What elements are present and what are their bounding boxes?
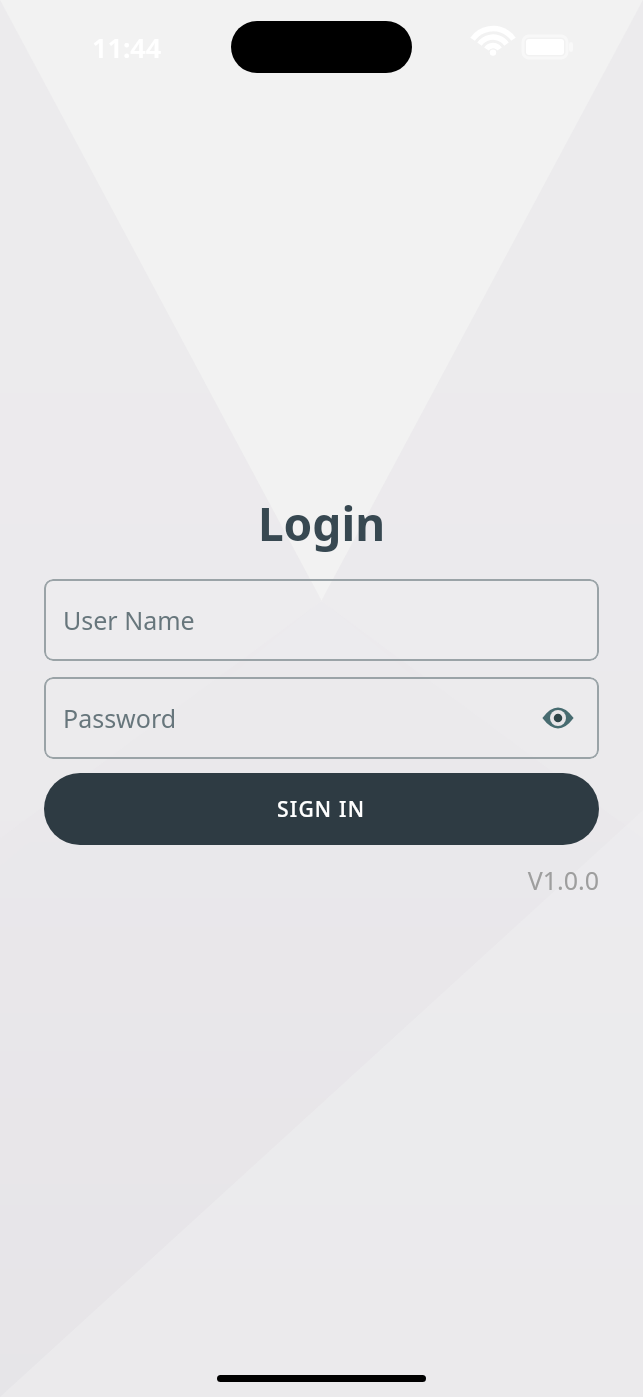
button[interactable]: SIGN IN — [44, 773, 599, 845]
staticText: Password — [63, 701, 177, 735]
staticText: Login — [44, 492, 599, 555]
staticText: User Name — [63, 603, 195, 637]
button[interactable]: User Name — [44, 579, 599, 661]
staticText: V1.0.0 — [44, 863, 599, 897]
staticText: 11:44 — [92, 29, 162, 66]
button[interactable]: Password — [44, 677, 599, 759]
button[interactable]: Show password — [536, 696, 580, 740]
staticText: SIGN IN — [277, 795, 366, 824]
